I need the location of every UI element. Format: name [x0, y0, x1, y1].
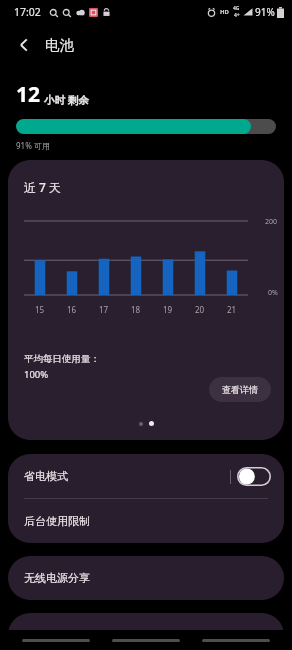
staticText: 自适应电池	[24, 629, 79, 643]
staticText: HD	[220, 8, 229, 16]
staticText: 91%	[255, 5, 275, 19]
staticText: 200	[265, 217, 278, 227]
staticText: 15	[35, 304, 45, 315]
staticText: 近 7 天	[24, 179, 62, 195]
staticText: 91% 可用	[16, 140, 50, 151]
staticText: 18	[131, 304, 141, 315]
staticText: 后台使用限制	[24, 514, 90, 528]
button[interactable]: 自适应电池	[8, 613, 284, 650]
staticText: 4G	[233, 5, 240, 12]
staticText: 平均每日使用量：	[24, 353, 100, 365]
staticText: 省电模式	[24, 469, 68, 483]
staticText: 12	[16, 80, 41, 109]
button[interactable]: 省电模式 toggle	[237, 467, 271, 486]
button[interactable]: 后台使用限制	[8, 499, 284, 543]
button[interactable]: Home	[112, 633, 180, 647]
staticText: 21	[227, 304, 237, 315]
button[interactable]: 近 7 天	[8, 160, 284, 440]
staticText: 0%	[268, 288, 278, 298]
staticText: 17:02	[14, 5, 41, 19]
staticText: 100%	[24, 368, 49, 381]
button[interactable]: Back	[7, 28, 41, 62]
button[interactable]: 无线电源分享	[8, 556, 284, 600]
staticText: 小时 剩余	[44, 93, 89, 107]
button[interactable]: Recents	[22, 633, 90, 647]
button[interactable]: 省电模式	[8, 454, 284, 498]
staticText: 16	[67, 304, 77, 315]
staticText: 电池	[45, 36, 74, 54]
staticText: 4+	[234, 12, 240, 19]
staticText: 无线电源分享	[24, 571, 90, 585]
staticText: 20	[195, 304, 205, 315]
button[interactable]: 查看详情	[209, 377, 271, 402]
staticText: 17	[99, 304, 109, 315]
button[interactable]: Back	[202, 633, 270, 647]
staticText: 查看详情	[222, 384, 258, 395]
staticText: 19	[163, 304, 173, 315]
